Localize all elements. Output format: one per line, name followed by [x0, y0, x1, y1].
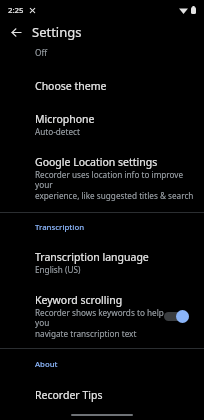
- button[interactable]: Choose theme: [0, 74, 204, 98]
- staticText: Transcription language: [35, 250, 149, 264]
- staticText: Settings: [32, 23, 82, 41]
- staticText: 2:25: [8, 5, 24, 16]
- staticText: Recorder uses location info to improve y…: [35, 169, 198, 190]
- staticText: Recorder Tips: [35, 388, 103, 402]
- button[interactable]: Keyword scrolling: [0, 288, 204, 344]
- button[interactable]: Recorder Tips: [0, 383, 204, 407]
- staticText: navigate transcription text: [35, 328, 137, 339]
- staticText: About: [35, 359, 58, 370]
- button[interactable]: Back: [5, 21, 27, 43]
- staticText: experience, like suggested titles & sear…: [35, 190, 194, 201]
- button[interactable]: Google Location settings: [0, 150, 204, 206]
- staticText: Auto-detect: [35, 126, 80, 137]
- staticText: Choose theme: [35, 79, 107, 93]
- staticText: Google Location settings: [35, 155, 158, 169]
- staticText: Keyword scrolling: [35, 293, 123, 307]
- staticText: English (US): [35, 264, 81, 275]
- staticText: Microphone: [35, 112, 95, 126]
- staticText: Off: [35, 47, 48, 58]
- staticText: Recorder shows keywords to help you: [35, 307, 164, 328]
- button[interactable]: Microphone: [0, 107, 204, 142]
- button[interactable]: Transcription language: [0, 245, 204, 280]
- staticText: Transcription: [35, 222, 85, 233]
